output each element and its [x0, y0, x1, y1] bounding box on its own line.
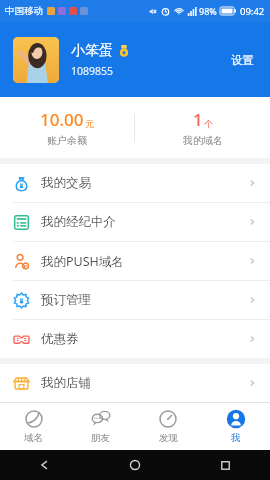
staticText: 我的交易 [41, 175, 91, 191]
button[interactable]: 1 [135, 97, 270, 158]
staticText: 优惠券 [41, 331, 79, 347]
staticText: 个 [204, 118, 213, 129]
staticText: 1089855 [71, 64, 114, 78]
button[interactable]: 我的经纪中介 [0, 203, 270, 241]
staticText: 发现 [159, 432, 178, 444]
other: Home [129, 459, 141, 471]
staticText: 我的经纪中介 [41, 214, 116, 230]
button[interactable]: 我 [202, 403, 270, 450]
staticText: 1 [193, 108, 203, 131]
button[interactable]: 10.00 [0, 97, 134, 158]
button[interactable]: 发现 [134, 403, 202, 450]
other: Recents [220, 460, 231, 471]
button[interactable]: 优惠券 [0, 320, 270, 358]
staticText: 设置 [231, 53, 254, 67]
staticText: 我 [231, 432, 241, 444]
other: Back [39, 459, 51, 471]
staticText: 元 [85, 118, 94, 129]
staticText: 域名 [24, 432, 43, 444]
staticText: 我的PUSH域名 [41, 253, 124, 270]
button[interactable]: 设置 [225, 47, 260, 73]
button[interactable]: Profile photo [13, 37, 59, 83]
staticText: 小笨蛋 [71, 42, 113, 60]
staticText: 朋友 [91, 432, 110, 444]
staticText: 10.00 [40, 108, 84, 131]
button[interactable]: 我的交易 [0, 164, 270, 202]
staticText: 98% [199, 5, 217, 17]
button[interactable]: 预订管理 [0, 281, 270, 319]
button[interactable]: 朋友 [67, 403, 134, 450]
staticText: 中国移动 [5, 5, 43, 17]
staticText: 账户余额 [47, 134, 87, 147]
button[interactable]: 我的店铺 [0, 364, 270, 402]
staticText: 预订管理 [41, 292, 91, 308]
staticText: 我的店铺 [41, 375, 91, 391]
button[interactable]: 我的PUSH域名 [0, 242, 270, 280]
staticText: 我的域名 [183, 134, 223, 147]
staticText: 09:42 [240, 5, 265, 18]
button[interactable]: 域名 [0, 403, 67, 450]
